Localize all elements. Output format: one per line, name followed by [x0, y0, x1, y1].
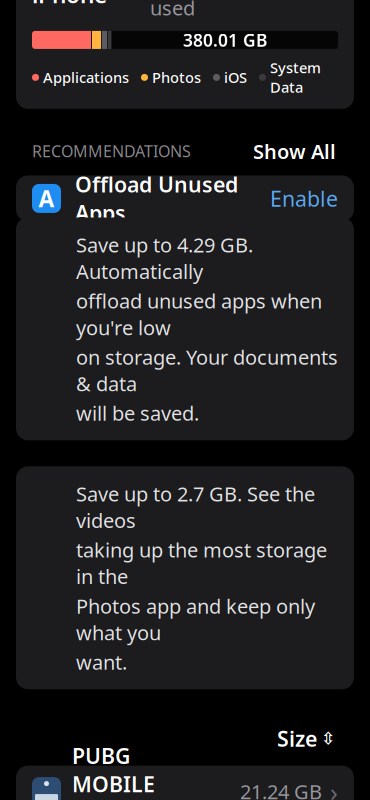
- button[interactable]: Size: [275, 721, 338, 756]
- staticText: PUBG MOBILE: [72, 741, 155, 798]
- staticText: ›: [330, 775, 338, 800]
- staticText: Save up to 4.29 GB. Automatically: [76, 231, 253, 284]
- staticText: iOS: [224, 68, 247, 87]
- staticText: will be saved.: [76, 400, 199, 426]
- staticText: taking up the most storage in the: [76, 536, 327, 590]
- button[interactable]: A: [0, 175, 370, 221]
- staticText: Photos app and keep only what you: [76, 593, 315, 646]
- staticText: offload unused apps when you're low: [76, 288, 322, 341]
- staticText: 131.99 GB of 512 GB used: [150, 0, 338, 21]
- staticText: Enable: [270, 184, 338, 213]
- staticText: want.: [76, 649, 127, 675]
- staticText: Save up to 2.7 GB. See the videos: [76, 480, 315, 533]
- staticText: 380.01 GB: [183, 28, 267, 51]
- staticText: on storage. Your documents & data: [76, 344, 338, 397]
- staticText: Photos: [152, 68, 201, 87]
- staticText: RECOMMENDATIONS: [32, 140, 191, 162]
- staticText: ⇳: [321, 729, 336, 748]
- staticText: Size: [277, 724, 317, 753]
- button[interactable]: PUBG MOBILE: [16, 766, 354, 800]
- staticText: Offload Unused Apps: [75, 170, 238, 227]
- staticText: Show All: [253, 138, 336, 164]
- staticText: 21.24 GB: [240, 778, 322, 800]
- staticText: A: [38, 183, 54, 213]
- staticText: Applications: [43, 68, 129, 87]
- staticText: System Data: [270, 58, 321, 97]
- staticText: iPhone: [32, 0, 107, 9]
- button[interactable]: Show All: [251, 135, 338, 167]
